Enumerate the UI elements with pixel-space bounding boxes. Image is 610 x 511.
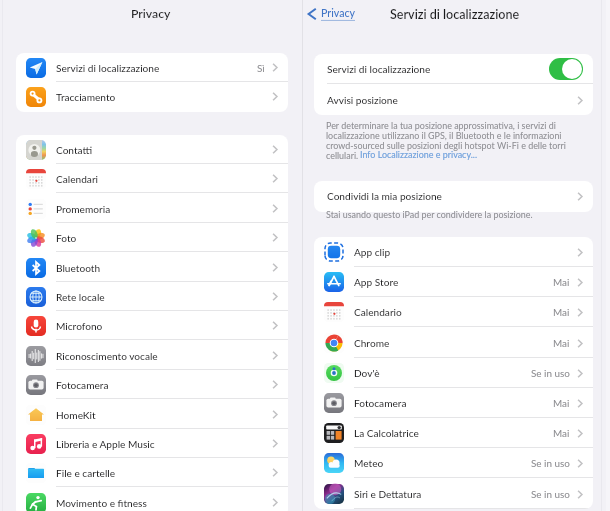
button[interactable]: Bluetooth — [16, 253, 288, 282]
staticText: Promemoria — [56, 203, 111, 215]
staticText: Fotocamera — [354, 397, 407, 409]
button[interactable]: Meteo — [314, 448, 593, 478]
staticText: Servizi di localizzazione — [56, 62, 160, 74]
staticText: App clip — [354, 246, 391, 258]
button[interactable]: Fotocamera — [16, 370, 288, 399]
button[interactable]: La Calcolatrice — [314, 418, 593, 448]
staticText: Condividi la mia posizione — [327, 190, 442, 202]
staticText: Privacy — [321, 7, 356, 20]
staticText: Privacy — [131, 6, 171, 21]
button[interactable]: App Store — [314, 267, 593, 297]
staticText: File e cartelle — [56, 467, 116, 479]
staticText: Siri e Dettatura — [354, 488, 422, 500]
button[interactable]: App clip — [314, 237, 593, 267]
staticText: Per determinare la tua posizione appross… — [326, 120, 566, 161]
button[interactable]: File e cartelle — [16, 458, 288, 487]
staticText: Calendario — [354, 306, 402, 318]
button[interactable]: Movimento e fitness — [16, 488, 288, 511]
button[interactable]: Calendari — [16, 164, 288, 193]
staticText: Mai — [553, 276, 570, 288]
button[interactable]: HomeKit — [16, 400, 288, 429]
button[interactable]: Siri e Dettatura — [314, 479, 593, 509]
staticText: Foto — [56, 232, 77, 244]
button[interactable]: Microfono — [16, 311, 288, 340]
button[interactable]: Servizi di localizzazione — [16, 53, 288, 82]
button[interactable]: Libreria e Apple Music — [16, 429, 288, 458]
staticText: Servizi di localizzazione — [327, 63, 431, 75]
staticText: Chrome — [354, 337, 390, 349]
staticText: Stai usando questo iPad per condividere … — [326, 209, 533, 220]
button[interactable]: Contatti — [16, 135, 288, 164]
staticText: Sì — [257, 62, 265, 74]
staticText: Avvisi posizione — [327, 94, 398, 106]
staticText: Tracciamento — [56, 91, 116, 103]
button[interactable]: Condividi la mia posizione — [314, 181, 593, 211]
button[interactable]: Chrome — [314, 328, 593, 358]
staticText: Mai — [553, 397, 570, 409]
staticText: La Calcolatrice — [354, 427, 419, 439]
staticText: Se in uso — [531, 488, 570, 500]
staticText: Riconoscimento vocale — [56, 350, 158, 362]
button[interactable]: Dov'è — [314, 358, 593, 388]
staticText: Calendari — [56, 173, 99, 185]
button[interactable]: Back to Privacy — [307, 3, 356, 24]
staticText: Bluetooth — [56, 262, 101, 274]
staticText: Se in uso — [531, 457, 570, 469]
button[interactable]: Avvisi posizione — [314, 85, 593, 115]
button[interactable]: Servizi di localizzazione — [314, 54, 593, 84]
staticText: Movimento e fitness — [56, 497, 147, 509]
staticText: Mai — [553, 306, 570, 318]
staticText: Se in uso — [531, 367, 570, 379]
staticText: Contatti — [56, 144, 93, 156]
staticText: Servizi di localizzazione — [390, 7, 520, 22]
staticText: Rete locale — [56, 291, 105, 303]
button[interactable]: Foto — [16, 223, 288, 252]
staticText: App Store — [354, 276, 399, 288]
button[interactable]: Promemoria — [16, 194, 288, 223]
button[interactable]: Rete locale — [16, 282, 288, 311]
button[interactable]: Riconoscimento vocale — [16, 341, 288, 370]
staticText: Mai — [553, 427, 570, 439]
staticText: Microfono — [56, 320, 103, 332]
staticText: Libreria e Apple Music — [56, 438, 155, 450]
staticText: Fotocamera — [56, 379, 109, 391]
staticText: Mai — [553, 337, 570, 349]
staticText: HomeKit — [56, 409, 96, 421]
button[interactable]: Calendario — [314, 297, 593, 327]
staticText: Meteo — [354, 457, 384, 469]
button[interactable]: Fotocamera — [314, 388, 593, 418]
button[interactable]: Tracciamento — [16, 82, 288, 111]
staticText: Dov'è — [354, 367, 380, 379]
staticText: Info Localizzazione e privacy... — [360, 149, 478, 160]
